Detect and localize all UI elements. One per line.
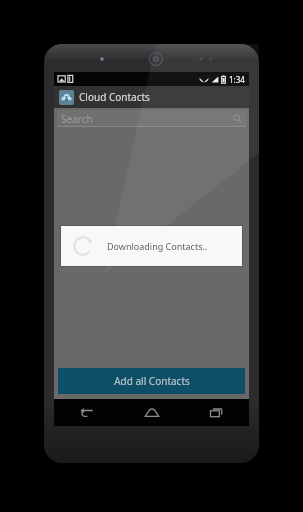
button[interactable]: Back [54,399,119,426]
staticText: Search [61,112,93,126]
button[interactable]: Add all Contacts [58,368,245,394]
staticText: Downloading Contacts.. [107,240,208,252]
button[interactable]: Home [119,399,184,426]
other: Cloud Contacts icon [59,90,74,105]
staticText: 1:34 [229,74,245,85]
staticText: Cloud Contacts [79,90,150,104]
staticText: Add all Contacts [114,374,190,388]
button[interactable]: Recent apps [184,399,249,426]
button[interactable]: Search [57,110,246,127]
